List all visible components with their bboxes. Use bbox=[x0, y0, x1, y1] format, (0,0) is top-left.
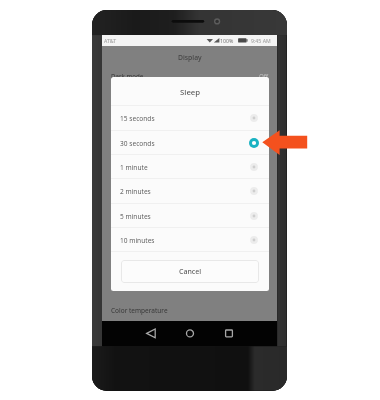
staticText: 5 minutes bbox=[120, 212, 151, 221]
button[interactable]: Cancel bbox=[121, 260, 259, 283]
staticText: 9:45 AM bbox=[251, 37, 271, 44]
button[interactable]: 10 minutes bbox=[111, 227, 269, 251]
staticText: Cancel bbox=[179, 267, 202, 277]
staticText: Sleep bbox=[180, 87, 201, 98]
staticText: 100% bbox=[220, 37, 234, 44]
button[interactable]: 2 minutes bbox=[111, 178, 269, 202]
button[interactable]: 15 seconds bbox=[111, 105, 269, 129]
button[interactable]: 30 seconds bbox=[111, 130, 269, 154]
staticText: 10 minutes bbox=[120, 236, 155, 245]
staticText: 2 minutes bbox=[120, 187, 151, 196]
button[interactable]: 5 minutes bbox=[111, 203, 269, 227]
staticText: 1 minute bbox=[120, 163, 148, 172]
staticText: 15 seconds bbox=[120, 114, 155, 123]
staticText: AT&T bbox=[104, 37, 117, 44]
button[interactable]: Recent apps bbox=[215, 321, 243, 346]
button[interactable]: Back bbox=[137, 321, 165, 346]
button[interactable]: 1 minute bbox=[111, 154, 269, 178]
staticText: Off bbox=[259, 72, 269, 80]
staticText: Dark mode bbox=[111, 72, 144, 80]
staticText: 30 seconds bbox=[120, 139, 155, 148]
staticText: Color temperature bbox=[111, 306, 168, 315]
other: Pointer bbox=[0, 0, 380, 400]
staticText: Display bbox=[178, 53, 202, 62]
button[interactable]: Home bbox=[176, 321, 204, 346]
